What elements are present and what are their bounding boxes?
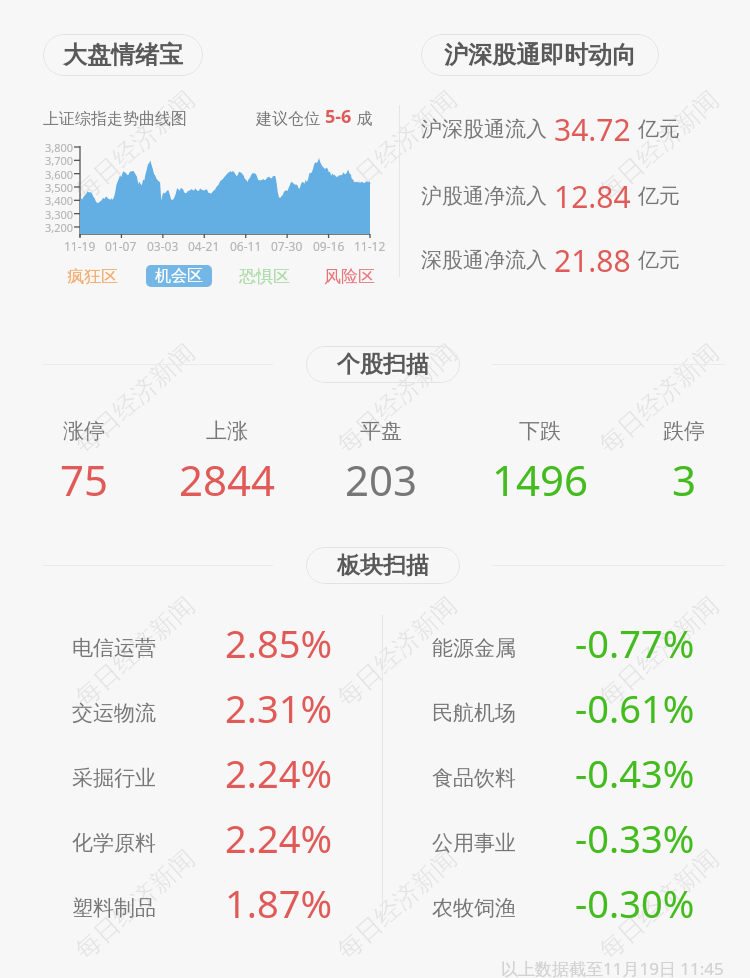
staticText: 每日经济新闻 <box>593 84 725 207</box>
staticText: 每日经济新闻 <box>331 84 463 207</box>
staticText: 每日经济新闻 <box>593 590 725 713</box>
staticText: 能源金属 <box>432 635 516 661</box>
staticText: 03-03 <box>147 238 179 254</box>
staticText: -0.43% <box>575 747 695 799</box>
staticText: 2.24% <box>225 812 332 864</box>
staticText: 建议仓位 <box>256 107 325 129</box>
staticText: 亿元 <box>638 116 680 142</box>
staticText: -0.33% <box>575 812 695 864</box>
staticText: 3,300 <box>45 207 74 221</box>
staticText: 06-11 <box>230 238 262 254</box>
staticText: 每日经济新闻 <box>593 337 725 460</box>
staticText: 化学原料 <box>72 830 156 856</box>
staticText: 11-12 <box>354 238 386 254</box>
staticText: 3,600 <box>45 167 74 181</box>
staticText: 3,700 <box>45 153 74 167</box>
staticText: 1.87% <box>225 877 332 929</box>
button[interactable]: 恐惧区 <box>224 263 304 289</box>
button[interactable]: 机会区 <box>146 265 212 287</box>
staticText: 75 <box>9 451 159 508</box>
staticText: 采掘行业 <box>72 765 156 791</box>
staticText: 深股通净流入 <box>421 247 547 273</box>
staticText: 每日经济新闻 <box>69 84 201 207</box>
button[interactable]: 个股扫描 <box>306 346 460 383</box>
staticText: 3,400 <box>45 193 74 207</box>
staticText: 电信运营 <box>72 635 156 661</box>
staticText: 34.72 <box>554 109 631 149</box>
staticText: 21.88 <box>554 240 631 280</box>
staticText: 04-21 <box>188 238 220 254</box>
button[interactable]: 公用事业 <box>432 815 695 871</box>
staticText: 亿元 <box>638 183 680 209</box>
staticText: 每日经济新闻 <box>69 590 201 713</box>
button[interactable]: 化学原料 <box>72 815 332 871</box>
staticText: 1496 <box>465 451 615 508</box>
staticText: 恐惧区 <box>239 266 290 287</box>
button[interactable]: 塑料制品 <box>72 880 332 936</box>
staticText: 公用事业 <box>432 830 516 856</box>
staticText: 5-6 <box>325 104 352 129</box>
button[interactable]: 采掘行业 <box>72 750 332 806</box>
staticText: 203 <box>306 451 456 508</box>
staticText: 食品饮料 <box>432 765 516 791</box>
staticText: 交运物流 <box>72 700 156 726</box>
button[interactable]: 电信运营 <box>72 620 332 676</box>
button[interactable]: 能源金属 <box>432 620 695 676</box>
staticText: 跌停 <box>609 418 750 444</box>
staticText: 每日经济新闻 <box>593 843 725 966</box>
staticText: 2.31% <box>225 682 332 734</box>
staticText: 个股扫描 <box>337 350 429 379</box>
staticText: 下跌 <box>465 418 615 444</box>
button[interactable]: 板块扫描 <box>306 547 460 584</box>
button[interactable]: 农牧饲渔 <box>432 880 695 936</box>
button[interactable]: 疯狂区 <box>52 263 132 289</box>
staticText: 每日经济新闻 <box>69 337 201 460</box>
staticText: 涨停 <box>9 418 159 444</box>
staticText: 3,200 <box>45 220 74 234</box>
staticText: 亿元 <box>638 247 680 273</box>
staticText: 塑料制品 <box>72 895 156 921</box>
staticText: 09-16 <box>313 238 345 254</box>
staticText: 01-07 <box>105 238 137 254</box>
staticText: 平盘 <box>306 418 456 444</box>
staticText: 大盘情绪宝 <box>63 40 183 70</box>
staticText: 2.85% <box>225 617 332 669</box>
staticText: 2844 <box>152 451 302 508</box>
staticText: 每日经济新闻 <box>331 843 463 966</box>
staticText: 每日经济新闻 <box>331 337 463 460</box>
staticText: 上涨 <box>152 418 302 444</box>
button[interactable]: 大盘情绪宝 <box>43 34 203 76</box>
staticText: 农牧饲渔 <box>432 895 516 921</box>
staticText: 07-30 <box>271 238 303 254</box>
staticText: 沪股通净流入 <box>421 183 547 209</box>
button[interactable]: 沪深股通即时动向 <box>421 34 659 76</box>
staticText: -0.77% <box>575 617 695 669</box>
staticText: 机会区 <box>155 266 203 286</box>
staticText: 沪深股通流入 <box>421 116 547 142</box>
staticText: 疯狂区 <box>67 266 118 287</box>
staticText: 2.24% <box>225 747 332 799</box>
button[interactable]: 交运物流 <box>72 685 332 741</box>
staticText: 每日经济新闻 <box>69 843 201 966</box>
staticText: 3 <box>609 451 750 508</box>
staticText: 3,800 <box>45 140 74 154</box>
staticText: 风险区 <box>324 266 375 287</box>
button[interactable]: 食品饮料 <box>432 750 695 806</box>
staticText: 3,500 <box>45 180 74 194</box>
staticText: 11-19 <box>64 238 96 254</box>
staticText: 板块扫描 <box>337 551 429 580</box>
staticText: -0.61% <box>575 682 695 734</box>
staticText: 民航机场 <box>432 700 516 726</box>
button[interactable]: 风险区 <box>309 263 389 289</box>
staticText: 以上数据截至11月19日 11:45 <box>501 957 724 978</box>
staticText: 沪深股通即时动向 <box>444 40 636 70</box>
staticText: 12.84 <box>554 176 631 216</box>
staticText: -0.30% <box>575 877 695 929</box>
staticText: 成 <box>352 107 373 129</box>
button[interactable]: 民航机场 <box>432 685 695 741</box>
staticText: 每日经济新闻 <box>331 590 463 713</box>
staticText: 上证综指走势曲线图 <box>43 109 187 129</box>
